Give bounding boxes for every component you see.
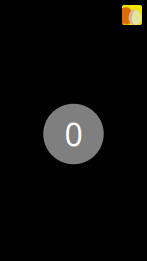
button[interactable]: Open app <box>122 5 142 25</box>
button[interactable]: Count, 0 <box>43 104 104 164</box>
staticText: 0 <box>64 113 82 155</box>
